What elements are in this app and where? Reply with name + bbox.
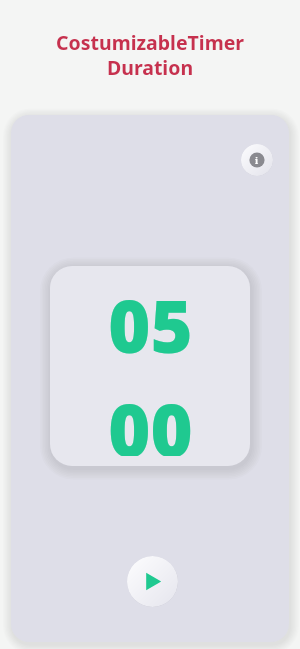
staticText: 05 [108, 276, 193, 374]
staticText: 00 [108, 380, 193, 456]
staticText: CostumizableTimer Duration [0, 29, 300, 81]
button[interactable]: Start timer [127, 556, 178, 607]
staticText: i [255, 154, 259, 166]
button[interactable]: Information [241, 144, 273, 176]
